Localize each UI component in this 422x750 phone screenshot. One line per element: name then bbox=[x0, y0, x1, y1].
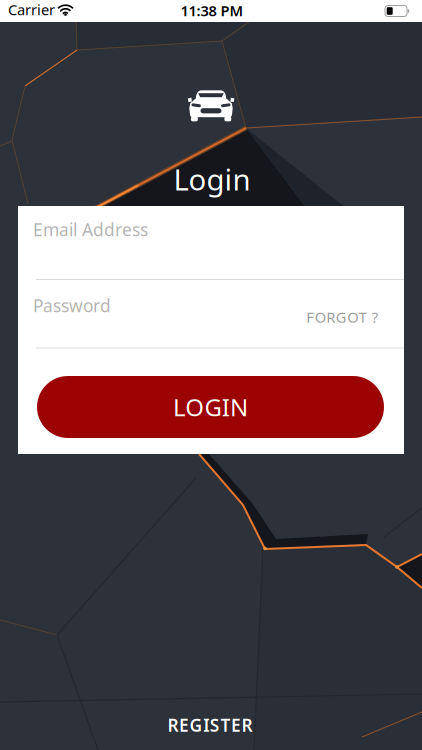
button[interactable]: Email Address bbox=[36, 215, 404, 280]
staticText: Carrier bbox=[8, 0, 55, 19]
staticText: Email Address bbox=[33, 218, 148, 241]
staticText: Login bbox=[173, 159, 250, 198]
staticText: Password bbox=[33, 294, 111, 317]
staticText: REGISTER bbox=[167, 713, 253, 736]
button[interactable]: Password bbox=[36, 290, 404, 348]
staticText: LOGIN bbox=[173, 391, 248, 423]
button[interactable]: FORGOT ? bbox=[306, 307, 378, 327]
staticText: FORGOT ? bbox=[306, 307, 378, 327]
staticText: 11:38 PM bbox=[180, 1, 243, 20]
button[interactable]: REGISTER bbox=[167, 713, 253, 736]
button[interactable]: LOGIN bbox=[37, 376, 384, 438]
